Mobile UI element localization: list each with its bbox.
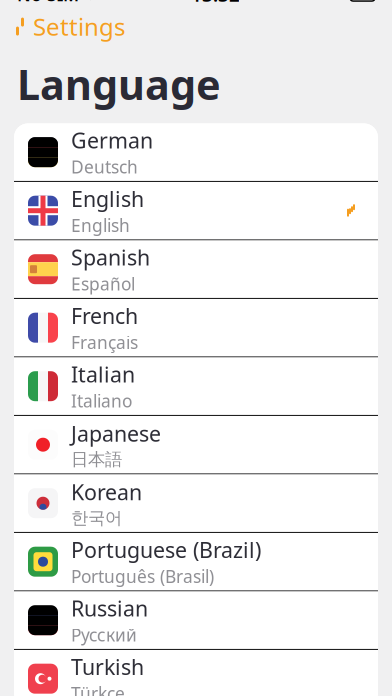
button[interactable]: French — [14, 299, 378, 357]
staticText: Français — [71, 331, 138, 354]
staticText: Turkish — [71, 652, 144, 681]
staticText: 13:32 — [191, 0, 240, 7]
staticText: German — [71, 126, 153, 154]
staticText: Русский — [71, 623, 137, 646]
staticText: Language — [17, 57, 221, 111]
staticText: Italiano — [71, 389, 132, 412]
staticText: Italian — [71, 360, 135, 388]
staticText: Korean — [71, 478, 142, 506]
staticText: English — [71, 214, 130, 237]
button[interactable]: Korean — [14, 474, 378, 533]
button[interactable]: Russian — [14, 591, 378, 650]
staticText: English — [71, 184, 144, 213]
button[interactable]: Portuguese (Brazil) — [14, 533, 378, 591]
button[interactable]: Turkish — [14, 650, 378, 696]
button[interactable]: Japanese — [14, 416, 378, 474]
staticText: French — [71, 301, 138, 330]
staticText: Settings — [33, 11, 125, 42]
staticText: Türkçe — [71, 682, 125, 696]
button[interactable]: Italian — [14, 357, 378, 416]
staticText: Russian — [71, 594, 148, 622]
staticText: Español — [71, 272, 135, 295]
staticText: Português (Brasil) — [71, 565, 214, 588]
staticText: 한국어 — [71, 507, 122, 528]
staticText: Portuguese (Brazil) — [71, 535, 261, 564]
staticText: Deutsch — [71, 155, 138, 178]
staticText: No SIM — [17, 0, 79, 6]
staticText: Japanese — [71, 419, 161, 448]
button[interactable]: Settings — [0, 11, 135, 43]
button[interactable]: English — [14, 182, 378, 240]
button[interactable]: Spanish — [14, 240, 378, 299]
staticText: Spanish — [71, 243, 150, 271]
button[interactable]: German — [14, 123, 378, 182]
staticText: 日本語 — [71, 449, 122, 470]
